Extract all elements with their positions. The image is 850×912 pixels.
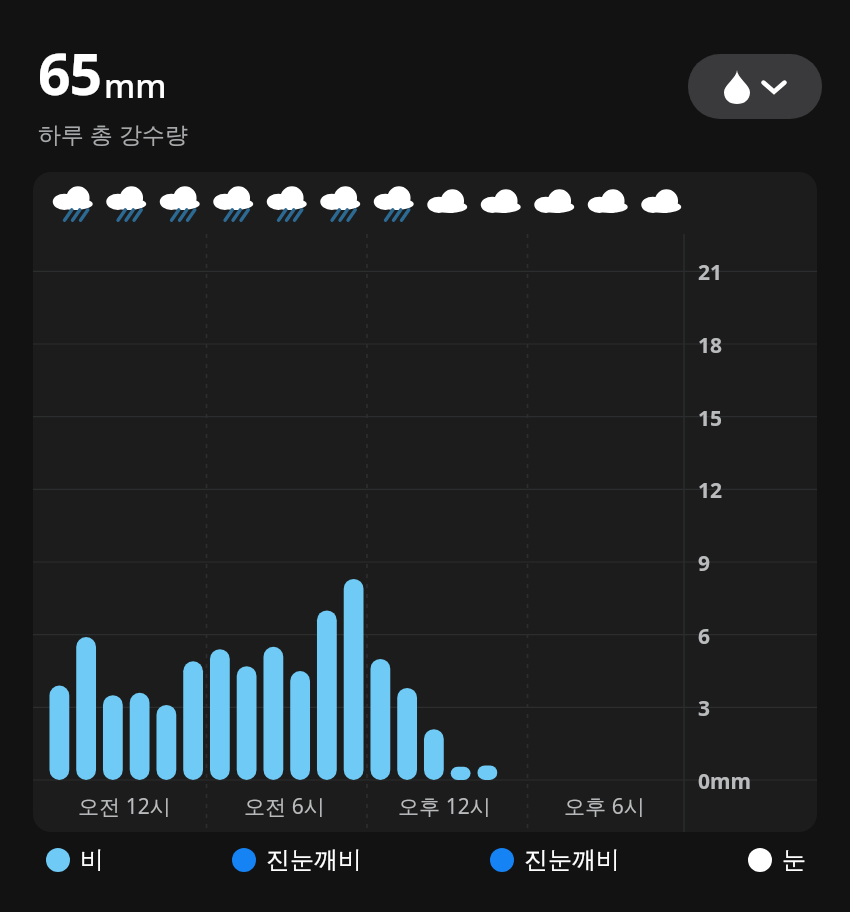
button[interactable]: 진눈깨비 bbox=[232, 845, 362, 875]
staticText: mm bbox=[104, 63, 167, 108]
button[interactable]: Precipitation, change metric bbox=[688, 54, 822, 119]
staticText: 6 bbox=[698, 622, 711, 651]
staticText: 15 bbox=[698, 404, 723, 433]
staticText: 65 bbox=[38, 34, 102, 112]
staticText: 진눈깨비 bbox=[524, 845, 620, 875]
staticText: 오후 6시 bbox=[564, 792, 645, 821]
staticText: 18 bbox=[698, 331, 723, 360]
staticText: 21 bbox=[698, 258, 723, 287]
staticText: 오전 12시 bbox=[78, 792, 171, 821]
staticText: 비 bbox=[80, 845, 104, 875]
staticText: 눈 bbox=[782, 845, 806, 875]
staticText: 진눈깨비 bbox=[266, 845, 362, 875]
staticText: 오후 12시 bbox=[398, 792, 491, 821]
staticText: 3 bbox=[698, 694, 711, 723]
button[interactable]: 눈 bbox=[748, 845, 806, 875]
staticText: 0mm bbox=[698, 767, 751, 796]
button[interactable]: 진눈깨비 bbox=[490, 845, 620, 875]
button[interactable]: 21 bbox=[33, 172, 817, 832]
staticText: 12 bbox=[698, 476, 723, 505]
staticText: 하루 총 강수량 bbox=[38, 118, 188, 149]
staticText: 오전 6시 bbox=[244, 792, 325, 821]
staticText: 9 bbox=[698, 549, 711, 578]
button[interactable]: 비 bbox=[46, 845, 104, 875]
